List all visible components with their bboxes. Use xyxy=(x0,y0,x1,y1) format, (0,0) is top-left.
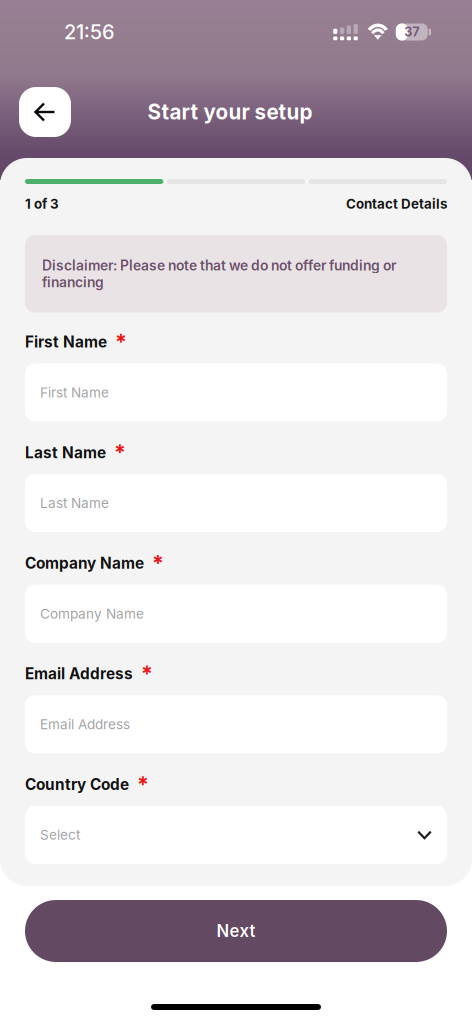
staticText: Phone Number xyxy=(25,886,138,904)
button[interactable]: Phone Number xyxy=(25,916,447,974)
staticText: Contact Details xyxy=(346,196,447,212)
staticText: Company Name xyxy=(40,605,144,622)
staticText: Disclaimer: Please note that we do not o… xyxy=(42,257,396,290)
staticText: Email Address xyxy=(25,664,133,683)
button[interactable]: Next xyxy=(25,900,447,962)
button[interactable]: Last Name xyxy=(25,474,447,532)
staticText: Next xyxy=(216,921,255,941)
staticText: Company Name xyxy=(25,554,144,572)
staticText: First Name xyxy=(40,384,109,401)
button[interactable]: Back xyxy=(19,87,71,137)
button[interactable]: Select xyxy=(25,806,447,864)
staticText: * xyxy=(141,661,153,687)
button[interactable]: Company Name xyxy=(25,585,447,643)
staticText: Last Name xyxy=(25,443,106,462)
staticText: * xyxy=(146,882,158,908)
staticText: 1 of 3 xyxy=(25,196,59,212)
staticText: Email Address xyxy=(40,716,130,733)
staticText: Start your setup xyxy=(147,99,312,124)
staticText: * xyxy=(152,550,164,576)
staticText: 37 xyxy=(404,24,419,40)
staticText: Select xyxy=(40,827,80,843)
button[interactable]: First Name xyxy=(25,363,447,421)
button[interactable]: Email Address xyxy=(25,695,447,753)
staticText: 21:56 xyxy=(64,20,115,44)
staticText: First Name xyxy=(25,333,107,351)
staticText: * xyxy=(114,440,126,465)
staticText: * xyxy=(137,771,149,797)
staticText: Last Name xyxy=(40,495,109,511)
staticText: Country Code xyxy=(25,775,129,794)
staticText: * xyxy=(115,329,127,355)
